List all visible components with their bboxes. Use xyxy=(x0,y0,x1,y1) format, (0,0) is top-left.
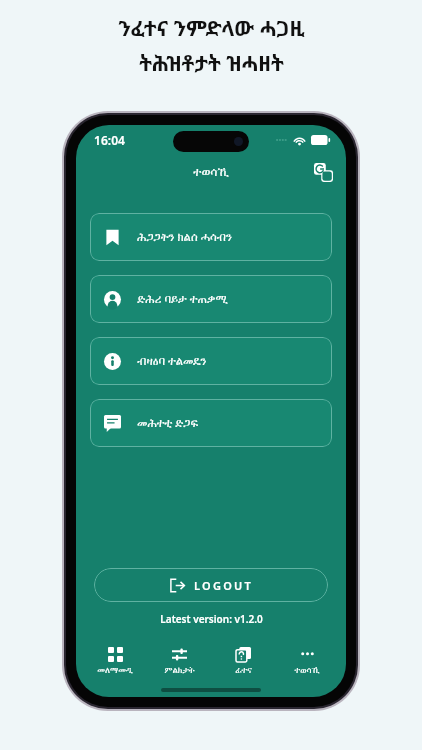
button[interactable]: መሕተቲ ድጋፍ xyxy=(90,399,332,447)
button[interactable]: ድሕሪ ባይታ ተጠቃሚ xyxy=(90,275,332,323)
staticText: Latest version: v1.2.0 xyxy=(160,612,263,626)
staticText: ንፈተና ንምድላው ሓጋዚ xyxy=(118,14,305,43)
staticText: ተወሳኺ xyxy=(294,666,320,675)
button[interactable]: መለማመዲ xyxy=(84,645,146,677)
staticText: ትሕዝቶታት ዝሓዘት xyxy=(139,49,284,78)
button[interactable]: Translate xyxy=(310,159,336,185)
staticText: መለማመዲ xyxy=(97,666,133,675)
staticText: ፈተና xyxy=(235,666,252,675)
staticText: ድሕሪ ባይታ ተጠቃሚ xyxy=(137,291,228,307)
staticText: ብዛዕባ ተልመዴን xyxy=(137,353,207,369)
button[interactable]: ብዛዕባ ተልመዴን xyxy=(90,337,332,385)
staticText: 16:04 xyxy=(94,132,125,148)
button[interactable]: ተወሳኺ xyxy=(276,645,338,677)
staticText: ሕጋጋትን ክልሰ ሓሳብን xyxy=(137,229,232,245)
staticText: ተወሳኺ xyxy=(193,166,229,178)
button[interactable]: ምልክታት xyxy=(148,645,210,677)
button[interactable]: ሕጋጋትን ክልሰ ሓሳብን xyxy=(90,213,332,261)
staticText: መሕተቲ ድጋፍ xyxy=(137,415,198,431)
button[interactable]: ፈተና xyxy=(212,645,274,677)
staticText: ምልክታት xyxy=(164,666,195,675)
button[interactable]: LOGOUT xyxy=(94,568,328,602)
staticText: LOGOUT xyxy=(194,578,253,593)
